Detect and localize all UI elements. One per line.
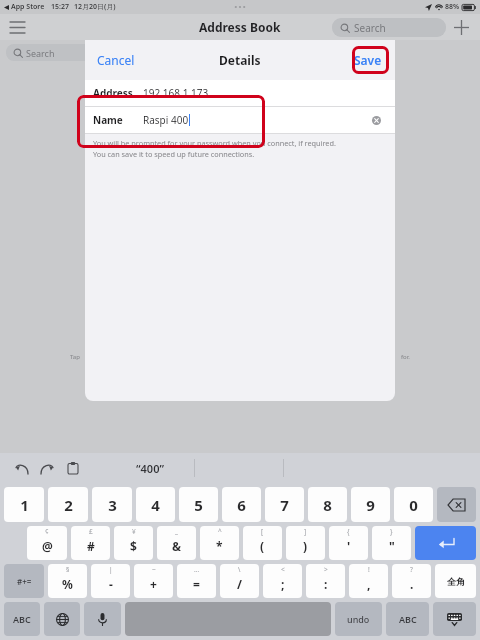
staticText: 8 <box>323 495 332 515</box>
staticText: ~ <box>152 565 156 574</box>
button[interactable]: ^ <box>200 526 239 560</box>
staticText: ABC <box>399 613 417 625</box>
button[interactable]: #+= <box>4 564 44 598</box>
staticText: Name <box>93 113 143 127</box>
staticText: Address Book <box>199 19 281 35</box>
button[interactable]: < <box>263 564 302 598</box>
button[interactable]: Redo <box>36 457 58 479</box>
button[interactable]: 4 <box>136 487 175 522</box>
button[interactable]: Name <box>85 107 395 133</box>
button[interactable]: } <box>372 526 411 560</box>
button[interactable]: £ <box>71 526 110 560</box>
staticText: … <box>194 565 200 574</box>
button[interactable]: Paste <box>62 457 84 479</box>
staticText: ^ <box>218 527 222 536</box>
staticText: 7 <box>280 495 289 515</box>
button[interactable]: … <box>177 564 216 598</box>
button[interactable]: Menu <box>6 16 28 38</box>
button[interactable]: 0 <box>394 487 433 522</box>
staticText: Details <box>219 52 261 68</box>
button[interactable]: Add <box>446 14 476 40</box>
staticText: < <box>281 565 285 574</box>
staticText: & <box>172 538 182 554</box>
staticText: Raspi 400 <box>143 113 189 127</box>
staticText: # <box>87 538 95 554</box>
button[interactable]: 8 <box>308 487 347 522</box>
button[interactable]: Clear text <box>367 111 385 129</box>
staticText: , <box>367 576 371 592</box>
button[interactable]: Undo <box>10 457 32 479</box>
button[interactable]: Hide keyboard <box>433 602 476 636</box>
button[interactable]: ABC <box>386 602 429 636</box>
button[interactable]: Address <box>85 80 395 106</box>
button[interactable]: ] <box>286 526 325 560</box>
button[interactable]: ? <box>392 564 431 598</box>
staticText: Search <box>26 47 55 59</box>
button[interactable]: Dictation <box>84 602 121 636</box>
button[interactable]: > <box>306 564 345 598</box>
button[interactable]: “400” <box>136 461 164 476</box>
staticText: 88% <box>445 2 460 12</box>
staticText: 15:27 <box>51 2 69 12</box>
staticText: 12月20日(月) <box>74 2 116 12</box>
staticText: ' <box>347 538 351 554</box>
button[interactable]: ABC <box>4 602 40 636</box>
button[interactable]: 3 <box>92 487 132 522</box>
staticText: } <box>390 527 393 536</box>
button[interactable]: _ <box>157 526 196 560</box>
staticText: 5 <box>194 495 203 515</box>
button[interactable]: [ <box>243 526 282 560</box>
staticText: #+= <box>17 576 32 587</box>
staticText: { <box>347 527 350 536</box>
staticText: + <box>150 576 157 592</box>
staticText: % <box>62 576 73 592</box>
button[interactable]: { <box>329 526 368 560</box>
staticText: 1 <box>20 495 29 515</box>
staticText: ABC <box>13 613 31 625</box>
button[interactable]: \ <box>220 564 259 598</box>
staticText: ¥ <box>132 527 136 536</box>
staticText: 6 <box>237 495 246 515</box>
button[interactable]: Search <box>6 44 130 61</box>
button[interactable]: undo <box>335 602 382 636</box>
button[interactable]: Cancel <box>89 48 143 72</box>
button[interactable]: 6 <box>222 487 261 522</box>
staticText: 192.168.1.173 <box>143 86 209 100</box>
staticText: ; <box>281 576 285 592</box>
button[interactable]: Search <box>332 18 446 37</box>
button[interactable]: | <box>91 564 130 598</box>
staticText: 0 <box>409 495 418 515</box>
button[interactable]: Change keyboard <box>44 602 80 636</box>
staticText: Cancel <box>97 52 135 68</box>
staticText: = <box>193 576 200 592</box>
staticText: * <box>216 538 223 554</box>
button[interactable]: ! <box>349 564 388 598</box>
staticText: Address <box>93 86 143 100</box>
staticText: _ <box>175 527 178 536</box>
button[interactable]: ¢ <box>27 526 67 560</box>
staticText: $ <box>130 538 137 554</box>
button[interactable]: Return <box>415 526 476 560</box>
button[interactable]: Delete <box>437 487 476 522</box>
button[interactable]: 7 <box>265 487 304 522</box>
staticText: 3 <box>108 495 117 515</box>
staticText: : <box>324 576 328 592</box>
button[interactable]: ¥ <box>114 526 153 560</box>
button[interactable]: § <box>48 564 87 598</box>
staticText: You will be prompted for your password w… <box>93 138 336 148</box>
button[interactable]: 5 <box>179 487 218 522</box>
button[interactable]: 2 <box>48 487 88 522</box>
button[interactable]: ~ <box>134 564 173 598</box>
staticText: / <box>237 576 242 592</box>
staticText: . <box>410 576 414 592</box>
staticText: @ <box>42 538 53 554</box>
button[interactable]: 全角 <box>435 564 476 598</box>
staticText: Search <box>354 21 386 35</box>
button[interactable]: 1 <box>4 487 44 522</box>
staticText: [ <box>261 527 264 536</box>
button[interactable]: 9 <box>351 487 390 522</box>
button[interactable]: Save <box>346 48 390 72</box>
staticText: \ <box>238 565 241 574</box>
staticText: 2 <box>64 495 73 515</box>
